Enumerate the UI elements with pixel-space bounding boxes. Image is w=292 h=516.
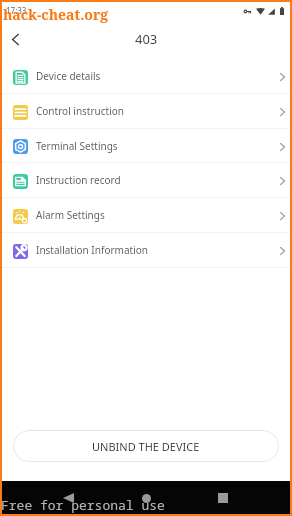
staticText: Terminal Settings — [36, 139, 118, 153]
button[interactable]: Installation Information — [2, 233, 290, 267]
staticText: Instruction record — [36, 173, 121, 187]
button[interactable]: Back — [55, 485, 81, 511]
staticText: Free for personal use — [1, 496, 165, 514]
staticText: hack-cheat.org — [3, 5, 109, 24]
staticText: UNBIND THE DEVICE — [92, 439, 200, 454]
button[interactable]: Instruction record — [2, 163, 290, 197]
button[interactable]: Terminal Settings — [2, 129, 290, 162]
button[interactable]: Home — [133, 485, 159, 511]
staticText: 17:33 — [6, 5, 27, 16]
button[interactable]: UNBIND THE DEVICE — [13, 430, 279, 462]
staticText: Device details — [36, 69, 101, 83]
staticText: 403 — [135, 30, 158, 48]
staticText: Installation Information — [36, 243, 148, 257]
staticText: Alarm Settings — [36, 208, 105, 222]
button[interactable]: Control instruction — [2, 94, 290, 128]
button[interactable]: Back — [3, 27, 27, 51]
button[interactable]: Alarm Settings — [2, 198, 290, 232]
button[interactable]: Recent apps — [210, 485, 236, 511]
button[interactable]: Device details — [2, 59, 290, 93]
staticText: Control instruction — [36, 104, 125, 118]
